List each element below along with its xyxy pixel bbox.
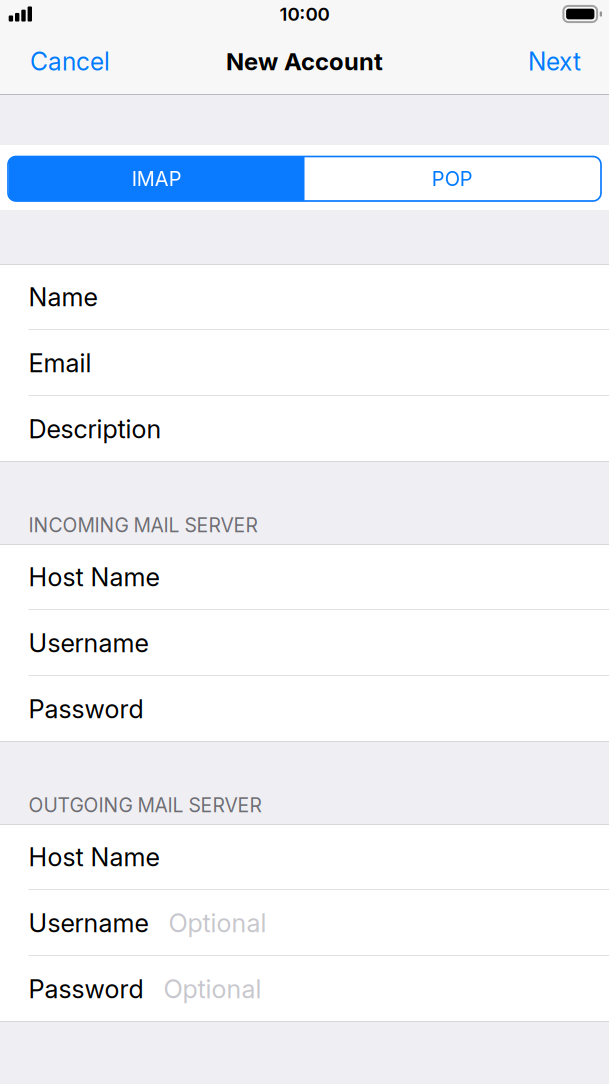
button[interactable]: Cancel: [0, 28, 126, 94]
button[interactable]: Description: [0, 396, 609, 462]
staticText: 10:00: [279, 3, 329, 25]
button[interactable]: IMAP: [9, 156, 304, 201]
staticText: POP: [432, 167, 473, 191]
staticText: Name: [28, 282, 97, 312]
staticText: IMAP: [132, 167, 182, 191]
staticText: INCOMING MAIL SERVER: [28, 514, 257, 537]
staticText: OUTGOING MAIL SERVER: [28, 794, 261, 817]
staticText: Optional: [168, 908, 266, 938]
staticText: Description: [28, 414, 161, 444]
button[interactable]: Username: [0, 890, 609, 956]
staticText: Next: [528, 47, 581, 76]
button[interactable]: Password: [0, 956, 609, 1022]
staticText: New Account: [226, 47, 383, 76]
staticText: Password: [28, 974, 143, 1004]
button[interactable]: Host Name: [0, 544, 609, 610]
staticText: Email: [28, 348, 91, 378]
button[interactable]: Next: [512, 28, 609, 94]
button[interactable]: Name: [0, 264, 609, 330]
button[interactable]: Password: [0, 676, 609, 742]
staticText: Host Name: [28, 562, 159, 592]
staticText: Optional: [163, 974, 261, 1004]
staticText: Password: [28, 694, 143, 724]
button[interactable]: POP: [304, 156, 600, 201]
button[interactable]: Email: [0, 330, 609, 396]
button[interactable]: Host Name: [0, 824, 609, 890]
button[interactable]: Username: [0, 610, 609, 676]
staticText: Host Name: [28, 842, 159, 872]
staticText: Cancel: [30, 47, 110, 76]
staticText: Username: [28, 628, 148, 658]
staticText: Username: [28, 908, 148, 938]
